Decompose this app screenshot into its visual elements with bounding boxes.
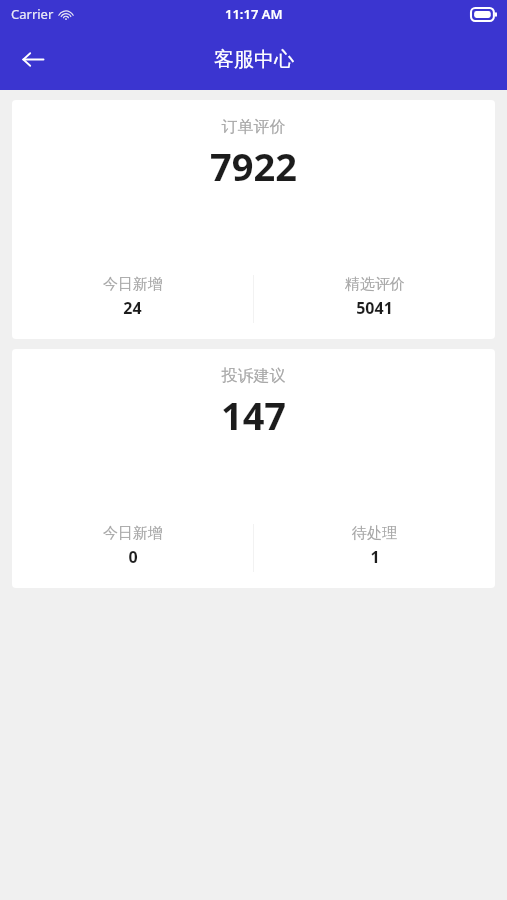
staticText: 今日新增	[103, 524, 163, 543]
staticText: Carrier	[11, 5, 54, 23]
staticText: 投诉建议	[12, 366, 495, 386]
button[interactable]: 精选评价	[254, 275, 495, 323]
staticText: 订单评价	[12, 117, 495, 137]
button[interactable]: Back	[12, 39, 52, 79]
staticText: 11:17 AM	[225, 5, 283, 23]
button[interactable]: 投诉建议	[12, 349, 495, 588]
staticText: 精选评价	[345, 275, 405, 294]
staticText: 5041	[356, 297, 393, 319]
button[interactable]: 今日新增	[12, 524, 253, 572]
staticText: 今日新增	[103, 275, 163, 294]
staticText: 1	[370, 546, 380, 568]
button[interactable]: 订单评价	[12, 100, 495, 339]
staticText: 147	[12, 389, 495, 441]
button[interactable]: 待处理	[254, 524, 495, 572]
staticText: 7922	[12, 140, 495, 192]
staticText: 0	[128, 546, 138, 568]
staticText: 待处理	[352, 524, 397, 543]
button[interactable]: 今日新增	[12, 275, 253, 323]
staticText: 客服中心	[214, 47, 294, 72]
staticText: 24	[123, 297, 142, 319]
